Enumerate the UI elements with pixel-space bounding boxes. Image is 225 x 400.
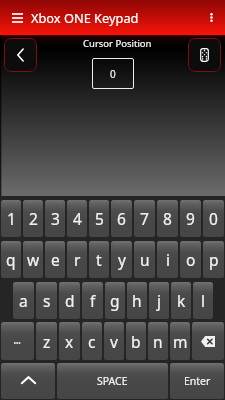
staticText: p [209,249,219,270]
staticText: c [88,331,96,352]
button[interactable]: 8 [157,200,178,237]
button[interactable]: More options [197,0,225,35]
button[interactable]: n [148,322,168,360]
staticText: 0 [110,67,116,81]
button[interactable]: 6 [111,200,132,237]
button[interactable]: 3 [45,200,65,237]
staticText: w [27,249,40,270]
button[interactable]: z [36,322,57,360]
button[interactable]: m [170,322,190,360]
button[interactable]: y [111,241,132,278]
staticText: r [74,249,81,270]
staticText: f [90,290,96,311]
button[interactable]: 0 [203,200,224,237]
button[interactable]: b [126,322,146,360]
staticText: 9 [186,208,195,229]
staticText: 8 [163,208,172,229]
button[interactable]: p [203,241,224,278]
button[interactable]: a [13,282,34,319]
button[interactable]: 9 [180,200,201,237]
staticText: j [157,290,161,311]
button[interactable]: x [59,322,80,360]
staticText: n [153,331,163,352]
staticText: k [177,290,186,311]
staticText: v [110,331,118,352]
button[interactable]: k [171,282,191,319]
staticText: g [110,290,120,311]
button[interactable]: Menu [0,0,31,35]
button[interactable]: q [1,241,21,278]
staticText: m [173,331,188,352]
staticText: 3 [51,208,60,229]
button[interactable]: d [59,282,80,319]
staticText: q [6,249,16,270]
staticText: t [96,249,102,270]
button[interactable]: 2 [23,200,43,237]
staticText: Enter [184,374,211,388]
staticText: l [201,290,205,311]
button[interactable]: o [180,241,201,278]
staticText: 0 [209,208,218,229]
button[interactable]: t [89,241,109,278]
staticText: SPACE [97,374,128,388]
staticText: o [186,249,196,270]
button[interactable]: Remote control [188,38,221,72]
staticText: 2 [29,208,38,229]
staticText: b [131,331,141,352]
staticText: u [140,249,150,270]
button[interactable]: Enter [170,363,224,399]
button[interactable]: l [193,282,213,319]
staticText: d [65,290,75,311]
staticText: 1 [7,208,16,229]
button[interactable]: 4 [67,200,87,237]
button[interactable]: u [134,241,155,278]
button[interactable]: c [82,322,102,360]
staticText: 7 [140,208,149,229]
staticText: 4 [73,208,82,229]
button[interactable]: v [104,322,124,360]
button[interactable]: Move left [4,38,37,72]
staticText: h [132,290,142,311]
button[interactable]: h [127,282,147,319]
staticText: 6 [117,208,126,229]
button[interactable] [1,322,34,360]
button[interactable]: 5 [89,200,109,237]
button[interactable] [1,363,55,399]
button[interactable]: j [149,282,169,319]
staticText: Xbox ONE Keypad [31,9,139,26]
button[interactable]: r [67,241,87,278]
staticText: Cursor Position [83,37,152,50]
button[interactable]: 7 [134,200,155,237]
staticText: a [19,290,28,311]
button[interactable]: s [36,282,57,319]
button[interactable]: f [82,282,103,319]
staticText: s [43,290,51,311]
staticText: 5 [95,208,104,229]
button[interactable]: 1 [1,200,21,237]
button[interactable]: w [23,241,43,278]
staticText: y [118,249,126,270]
button[interactable]: g [105,282,125,319]
button[interactable]: e [45,241,65,278]
staticText: x [65,331,74,352]
staticText: i [166,249,170,270]
staticText: e [51,249,60,270]
button[interactable]: SPACE [57,363,168,399]
button[interactable]: i [157,241,178,278]
button[interactable] [192,322,224,360]
staticText: z [43,331,51,352]
